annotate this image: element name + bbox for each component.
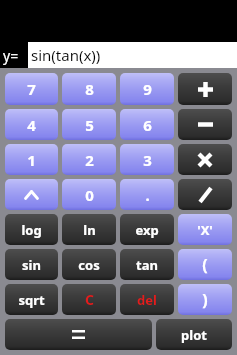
staticText: 0 bbox=[85, 185, 94, 205]
button[interactable]: ln bbox=[62, 214, 116, 245]
button[interactable]: plot bbox=[156, 319, 232, 350]
button[interactable]: 4 bbox=[5, 109, 58, 140]
staticText: 1 bbox=[27, 150, 36, 170]
staticText: plot bbox=[181, 326, 207, 344]
staticText: . bbox=[145, 185, 150, 205]
button[interactable]: 5 bbox=[62, 109, 116, 140]
staticText: tan bbox=[136, 256, 158, 274]
button[interactable]: sin bbox=[5, 249, 58, 280]
staticText: 6 bbox=[143, 115, 152, 135]
staticText: ln bbox=[83, 221, 96, 239]
staticText: 8 bbox=[85, 79, 94, 99]
staticText: 4 bbox=[27, 115, 36, 135]
button[interactable]: 0 bbox=[62, 179, 116, 210]
staticText: log bbox=[21, 221, 42, 239]
button[interactable]: ( bbox=[178, 249, 232, 280]
staticText: ( bbox=[202, 254, 208, 276]
button[interactable]: 8 bbox=[62, 73, 116, 105]
button[interactable]: Equals bbox=[5, 319, 152, 350]
button[interactable]: del bbox=[120, 284, 174, 315]
staticText: 5 bbox=[85, 115, 94, 135]
button[interactable]: Power bbox=[5, 179, 58, 210]
button[interactable]: sin(tan(x)) bbox=[28, 42, 237, 68]
button[interactable]: 9 bbox=[120, 73, 174, 105]
button[interactable]: Plus bbox=[178, 73, 232, 105]
button[interactable]: 1 bbox=[5, 144, 58, 175]
staticText: ) bbox=[202, 289, 208, 311]
staticText: sqrt bbox=[18, 291, 45, 309]
button[interactable]: 7 bbox=[5, 73, 58, 105]
button[interactable]: ) bbox=[178, 284, 232, 315]
staticText: 3 bbox=[143, 150, 152, 170]
button[interactable]: C bbox=[62, 284, 116, 315]
staticText: exp bbox=[135, 221, 159, 239]
staticText: C bbox=[85, 290, 94, 309]
staticText: del bbox=[137, 291, 157, 309]
button[interactable]: Multiply bbox=[178, 144, 232, 175]
staticText: sin(tan(x)) bbox=[31, 45, 101, 65]
button[interactable]: tan bbox=[120, 249, 174, 280]
button[interactable]: sqrt bbox=[5, 284, 58, 315]
button[interactable]: 'X' bbox=[178, 214, 232, 245]
staticText: y= bbox=[3, 46, 19, 65]
staticText: 'X' bbox=[197, 221, 213, 239]
button[interactable]: log bbox=[5, 214, 58, 245]
staticText: cos bbox=[78, 256, 100, 274]
button[interactable]: 6 bbox=[120, 109, 174, 140]
button[interactable]: 2 bbox=[62, 144, 116, 175]
staticText: 2 bbox=[85, 150, 94, 170]
staticText: 7 bbox=[27, 79, 36, 99]
button[interactable]: Minus bbox=[178, 109, 232, 140]
staticText: 9 bbox=[143, 79, 152, 99]
button[interactable]: Divide bbox=[178, 179, 232, 210]
button[interactable]: . bbox=[120, 179, 174, 210]
button[interactable]: cos bbox=[62, 249, 116, 280]
staticText: sin bbox=[22, 256, 41, 274]
button[interactable]: 3 bbox=[120, 144, 174, 175]
button[interactable]: exp bbox=[120, 214, 174, 245]
